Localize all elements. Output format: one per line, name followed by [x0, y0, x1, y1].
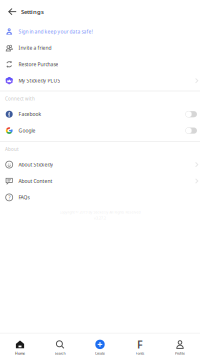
- button[interactable]: Search: [40, 333, 80, 356]
- staticText: Fonts: [135, 351, 144, 356]
- button[interactable]: F: [120, 333, 160, 356]
- button[interactable]: ?: [0, 189, 200, 206]
- staticText: About: [5, 146, 19, 152]
- staticText: My Sticker.ly PLUS: [18, 77, 60, 84]
- button[interactable]: Facebook: [0, 106, 200, 122]
- staticText: ?: [8, 194, 10, 201]
- button[interactable]: About Content: [0, 173, 200, 189]
- button[interactable]: Back: [4, 0, 21, 23]
- button[interactable]: Profile: [160, 333, 200, 356]
- staticText: Profile: [175, 351, 185, 356]
- button[interactable]: Google: [0, 122, 200, 139]
- staticText: About Content: [18, 178, 52, 184]
- staticText: Restore Purchase: [18, 61, 58, 68]
- staticText: FAQs: [18, 194, 29, 201]
- button[interactable]: Sign in and keep your data safe!: [0, 23, 200, 40]
- button[interactable]: Invite a friend: [0, 40, 200, 56]
- button[interactable]: Home: [0, 333, 40, 356]
- button[interactable]: Create: [80, 333, 120, 356]
- button[interactable]: Restore Purchase: [0, 56, 200, 72]
- button[interactable]: My Sticker.ly PLUS: [0, 72, 200, 89]
- staticText: About Sticker.ly: [18, 161, 53, 168]
- staticText: Facebook: [18, 111, 41, 117]
- staticText: Settings: [21, 8, 44, 16]
- staticText: Google: [18, 127, 35, 134]
- staticText: Connect with: [5, 96, 35, 102]
- staticText: Home: [15, 351, 25, 356]
- staticText: Invite a friend: [18, 44, 51, 51]
- staticText: F: [137, 337, 143, 352]
- staticText: Sign in and keep your data safe!: [18, 28, 92, 35]
- staticText: Search: [54, 351, 65, 356]
- staticText: Create: [95, 351, 105, 356]
- button[interactable]: About Sticker.ly: [0, 156, 200, 173]
